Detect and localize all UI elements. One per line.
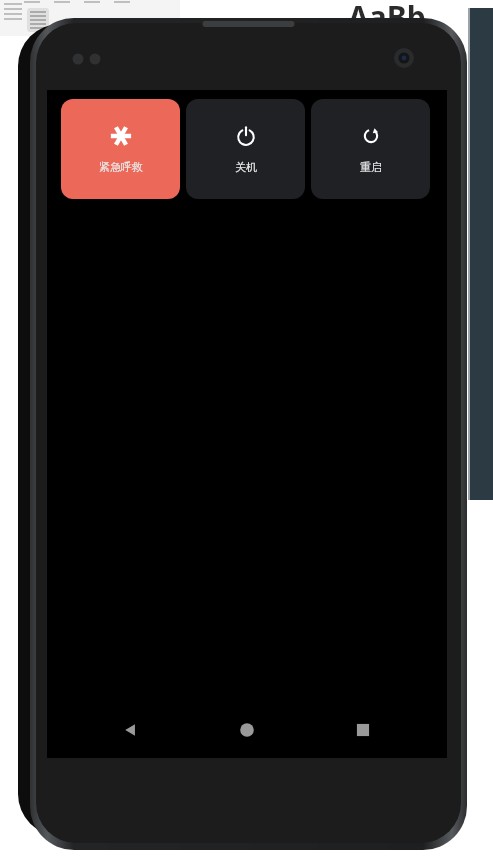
staticText: 关机 bbox=[235, 160, 257, 174]
staticText: AaBb bbox=[348, 0, 426, 37]
button[interactable]: 重启 bbox=[311, 99, 430, 199]
button[interactable]: Back bbox=[99, 706, 163, 754]
staticText: 2 bbox=[440, 20, 447, 35]
button[interactable]: Recent apps bbox=[331, 706, 395, 754]
button[interactable]: 紧急呼救 bbox=[61, 99, 180, 199]
staticText: 重启 bbox=[360, 160, 382, 174]
staticText: 紧急呼救 bbox=[99, 160, 143, 174]
button[interactable]: 关机 bbox=[186, 99, 305, 199]
button[interactable]: Home bbox=[215, 706, 279, 754]
